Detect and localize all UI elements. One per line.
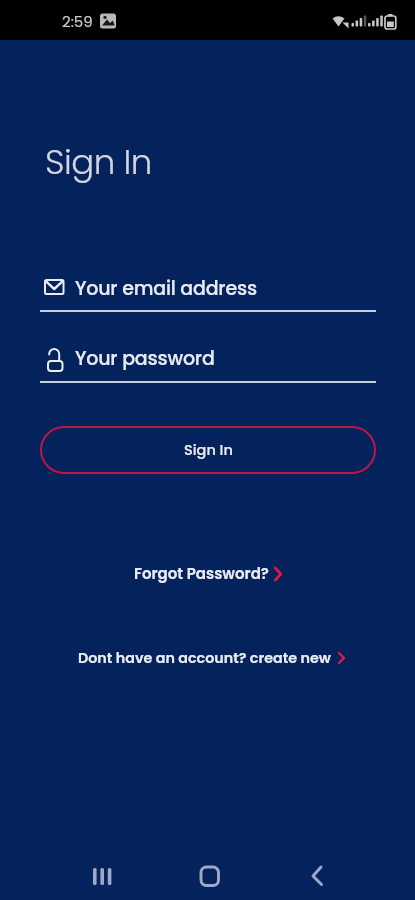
staticText: Your email address: [75, 275, 257, 302]
staticText: Forgot Password?: [134, 563, 269, 584]
staticText: Sign In: [45, 138, 152, 186]
staticText: Your password: [75, 345, 215, 372]
staticText: Dont have an account? create new: [78, 648, 331, 668]
staticText: Sign In: [184, 440, 233, 460]
staticText: 2:59: [62, 11, 93, 32]
